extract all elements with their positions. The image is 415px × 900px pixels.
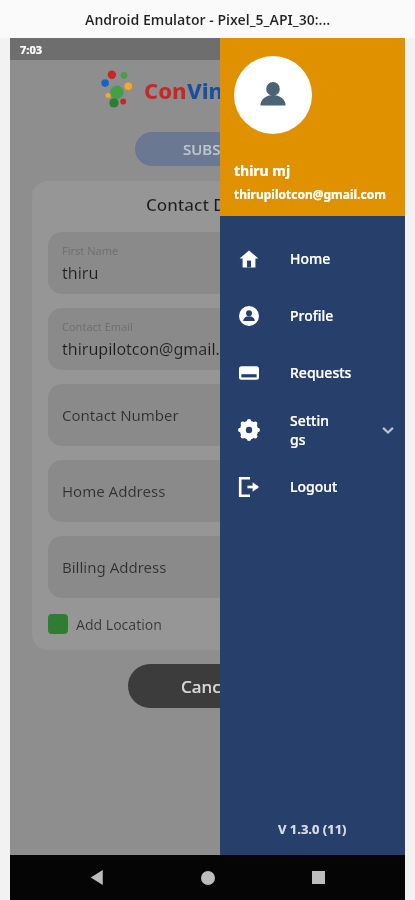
button[interactable]: Home Address	[48, 460, 367, 522]
staticText: Billing Address	[62, 557, 167, 577]
staticText: Logout	[290, 477, 338, 496]
button[interactable]: Contact Number	[48, 384, 367, 446]
staticText: thiru	[62, 262, 99, 284]
button[interactable]: Logout	[220, 458, 405, 515]
button[interactable]: Profile	[220, 287, 405, 344]
staticText: Home Address	[62, 481, 166, 501]
button[interactable]: Recent apps	[295, 855, 341, 900]
staticText: Home	[290, 249, 331, 268]
staticText: Profile	[290, 306, 334, 325]
button[interactable]: First Name	[48, 232, 367, 294]
staticText: 7:03	[20, 42, 42, 57]
button[interactable]: Contact Email	[48, 308, 367, 370]
staticText: Car	[230, 75, 268, 105]
staticText: Requests	[290, 363, 352, 382]
staticText: Con	[144, 75, 187, 105]
staticText: Settin gs	[290, 411, 330, 449]
button[interactable]: Back	[74, 855, 120, 900]
button[interactable]: Requests	[220, 344, 405, 401]
button[interactable]: SUBSCRIBER	[135, 132, 320, 166]
button[interactable]: Home	[185, 855, 231, 900]
button[interactable]: Add Location	[48, 614, 367, 634]
staticText: Add Location	[76, 615, 162, 634]
staticText: thirupilotcon@gmail.com	[234, 186, 386, 202]
staticText: First Name	[62, 243, 119, 258]
staticText: Contact Number	[62, 405, 179, 425]
staticText: Vini	[187, 75, 230, 105]
button[interactable]: Settin gs	[220, 401, 405, 458]
staticText: Contact Email	[62, 319, 133, 334]
button[interactable]: Home	[220, 230, 405, 287]
staticText: Cancel	[181, 675, 235, 698]
staticText: SUBSCRIBER	[183, 139, 273, 159]
other: Expand settings	[381, 423, 395, 437]
staticText: V 1.3.0 (11)	[278, 820, 347, 838]
button[interactable]: Billing Address	[48, 536, 367, 598]
staticText: thirupilotcon@gmail.com	[62, 338, 253, 360]
staticText: Android Emulator - Pixel_5_API_30:...	[85, 10, 331, 29]
staticText: thiru mj	[234, 161, 291, 180]
staticText: Contact Details	[146, 193, 270, 216]
button[interactable]: Cancel	[128, 664, 288, 708]
